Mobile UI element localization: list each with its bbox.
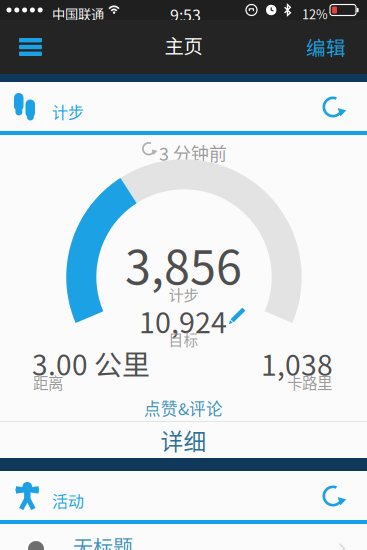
staticText: 3 分钟前 bbox=[159, 140, 227, 166]
staticText: 无标题 bbox=[73, 532, 133, 550]
staticText: 距离 bbox=[33, 371, 63, 393]
staticText: 9:53 bbox=[170, 3, 201, 26]
button[interactable]: Menu bbox=[8, 25, 53, 69]
staticText: 活动 bbox=[52, 489, 84, 512]
staticText: 计步 bbox=[168, 283, 198, 305]
button[interactable]: Refresh bbox=[310, 84, 356, 130]
staticText: 主页 bbox=[164, 31, 202, 59]
staticText: 详细 bbox=[160, 424, 206, 456]
button[interactable]: 无标题 bbox=[0, 524, 367, 550]
staticText: 编辑 bbox=[306, 33, 346, 61]
staticText: 10,924 bbox=[139, 300, 227, 341]
staticText: 中国联通 bbox=[52, 4, 104, 23]
staticText: 目标 bbox=[168, 328, 198, 350]
staticText: 1,038 bbox=[261, 343, 333, 384]
button[interactable]: Refresh bbox=[310, 473, 356, 519]
staticText: 12% bbox=[302, 4, 328, 23]
staticText: 点赞&评论 bbox=[144, 396, 223, 420]
staticText: 计步 bbox=[52, 100, 84, 123]
button[interactable]: 详细 bbox=[0, 422, 367, 458]
staticText: 卡路里 bbox=[287, 371, 332, 393]
staticText: 3,856 bbox=[125, 230, 242, 298]
button[interactable]: 编辑 bbox=[294, 25, 358, 69]
button[interactable]: 点赞&评论 bbox=[0, 395, 367, 421]
staticText: 3.00 公里 bbox=[32, 343, 150, 383]
